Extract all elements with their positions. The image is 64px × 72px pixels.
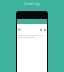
- staticText: Lorem ipsum dolor sit amet consecte: [18, 33, 46, 39]
- staticText: Hi: [18, 28, 21, 32]
- button[interactable]: [17, 19, 47, 24]
- staticText: Gmail app: [24, 2, 40, 6]
